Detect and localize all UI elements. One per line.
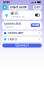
staticText: Connected (4, 22, 21, 25)
button[interactable]: Smart Home (9, 5, 28, 10)
staticText: HomeNet 5G (11, 15, 25, 18)
staticText: Connect (15, 44, 28, 47)
staticText: 9:41 (3, 0, 10, 4)
button[interactable]: Profile (2, 5, 7, 10)
button[interactable]: Connect (0, 42, 44, 47)
staticText: Edit (34, 6, 40, 9)
staticText: Manage (32, 24, 39, 26)
button[interactable]: Security (0, 36, 44, 42)
staticText: Wi-Fi (11, 12, 19, 15)
staticText: Network name (8, 32, 23, 35)
button[interactable]: Manage (31, 23, 40, 27)
staticText: Smart Home (10, 6, 27, 9)
staticText: Security (8, 38, 17, 41)
staticText: 4 devices (4, 26, 13, 28)
button[interactable]: Edit (33, 5, 42, 10)
button[interactable]: Network name (0, 29, 44, 36)
